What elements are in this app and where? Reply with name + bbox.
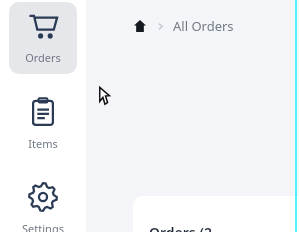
- button[interactable]: Home: [130, 16, 150, 36]
- staticText: Orders: [25, 50, 61, 65]
- button[interactable]: All Orders: [173, 17, 234, 35]
- button[interactable]: Items: [9, 88, 77, 160]
- staticText: Orders (2: [149, 223, 212, 232]
- staticText: Items: [28, 136, 58, 151]
- staticText: All Orders: [173, 17, 234, 35]
- staticText: Settings: [22, 221, 64, 232]
- button[interactable]: Settings: [9, 182, 77, 232]
- button[interactable]: Orders (2: [133, 196, 299, 232]
- button[interactable]: Orders: [9, 2, 77, 74]
